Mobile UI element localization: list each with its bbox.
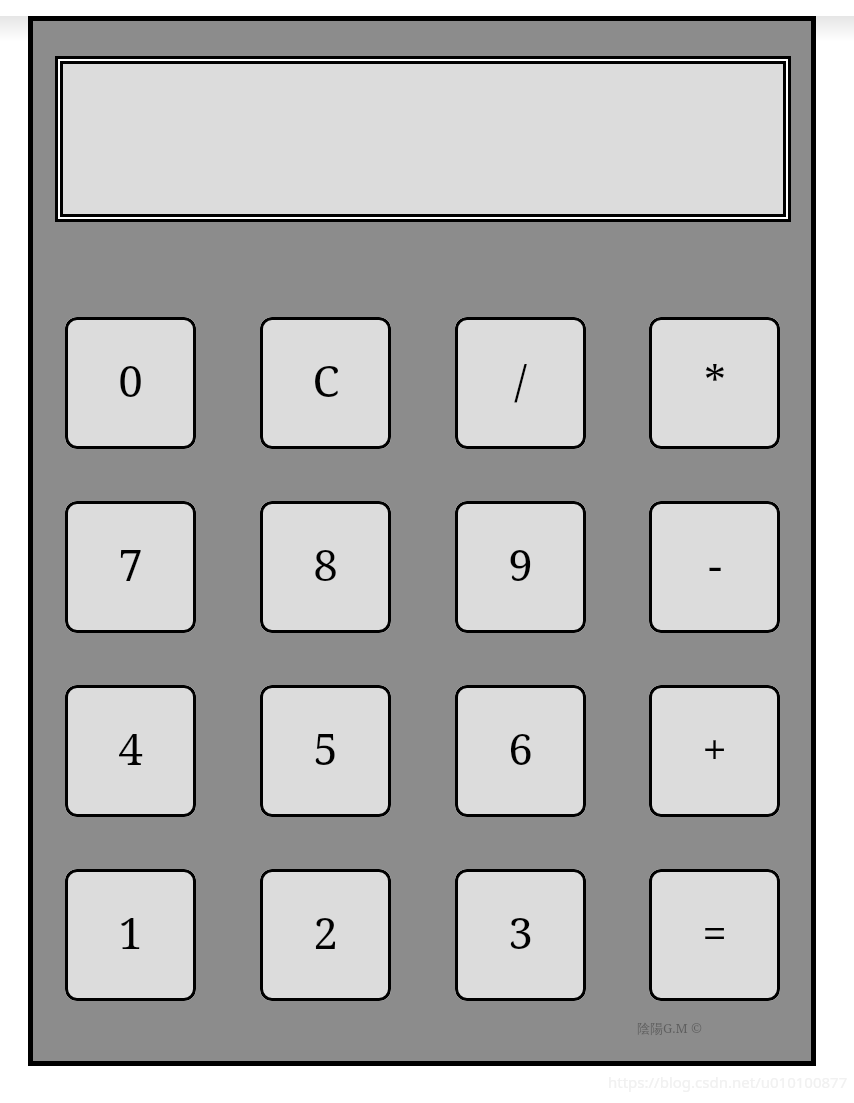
button[interactable]: Divide xyxy=(455,317,586,449)
button[interactable]: Multiply xyxy=(649,317,780,449)
staticText: 3 xyxy=(508,902,533,962)
button[interactable]: Plus xyxy=(649,685,780,817)
staticText: = xyxy=(702,902,727,962)
button[interactable]: Six xyxy=(455,685,586,817)
staticText: 8 xyxy=(313,534,338,594)
button[interactable]: Clear xyxy=(260,317,391,449)
staticText: 9 xyxy=(508,534,533,594)
staticText: 5 xyxy=(313,718,338,778)
staticText: + xyxy=(702,718,727,778)
staticText: https://blog.csdn.net/u010100877 xyxy=(608,1072,848,1092)
button[interactable]: Zero xyxy=(65,317,196,449)
button[interactable]: Three xyxy=(455,869,586,1001)
staticText: 4 xyxy=(118,718,143,778)
staticText: * xyxy=(704,350,726,410)
button[interactable]: Five xyxy=(260,685,391,817)
button[interactable]: Seven xyxy=(65,501,196,633)
button[interactable]: Four xyxy=(65,685,196,817)
staticText: 0 xyxy=(118,350,143,410)
button[interactable]: Equals xyxy=(649,869,780,1001)
staticText: / xyxy=(514,350,527,410)
button[interactable]: Minus xyxy=(649,501,780,633)
staticText: C xyxy=(312,350,340,410)
button[interactable]: Eight xyxy=(260,501,391,633)
staticText: 6 xyxy=(508,718,533,778)
staticText: 1 xyxy=(118,902,143,962)
button[interactable]: Nine xyxy=(455,501,586,633)
staticText: - xyxy=(708,534,722,594)
staticText: 2 xyxy=(313,902,338,962)
staticText: 陰陽G.M © xyxy=(637,1019,703,1037)
staticText: 7 xyxy=(118,534,143,594)
button[interactable]: Two xyxy=(260,869,391,1001)
button[interactable]: One xyxy=(65,869,196,1001)
